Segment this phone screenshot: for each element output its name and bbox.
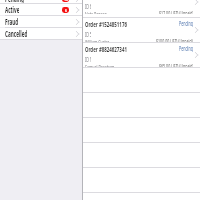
staticText: ID 6 [85,2,91,10]
button[interactable]: Order #1524851176 [83,18,200,42]
staticText: Cancelled [5,28,27,39]
staticText: ID 5 [85,30,91,38]
button[interactable]: Pending [0,0,82,3]
staticText: $17.00 USD (Unpaid) [159,9,193,14]
staticText: 6 [65,8,67,13]
staticText: $100.00 USD (Unpaid) [156,37,193,42]
button[interactable]: Fraud [0,16,82,27]
staticText: Pending [179,19,193,27]
button[interactable]: Order #8824627341 [83,43,200,67]
staticText: William Custer [85,38,109,42]
staticText: Active [5,4,19,15]
button[interactable]: Active [0,4,82,15]
staticText: Pending [179,44,193,52]
staticText: ID 1 [85,55,91,63]
staticText: Nate Benson [85,10,107,14]
staticText: Order #1524851176 [85,19,127,29]
button[interactable]: Cancelled [0,28,82,39]
staticText: Fraud [5,16,18,27]
staticText: Order #8824627341 [85,44,127,54]
staticText: 18 [64,0,68,2]
staticText: $65.00 USD (Unpaid) [159,62,193,67]
button[interactable]: Order #7211634422 [83,0,200,14]
staticText: Samuel Boseham [85,63,114,67]
staticText: Pending [5,0,24,3]
